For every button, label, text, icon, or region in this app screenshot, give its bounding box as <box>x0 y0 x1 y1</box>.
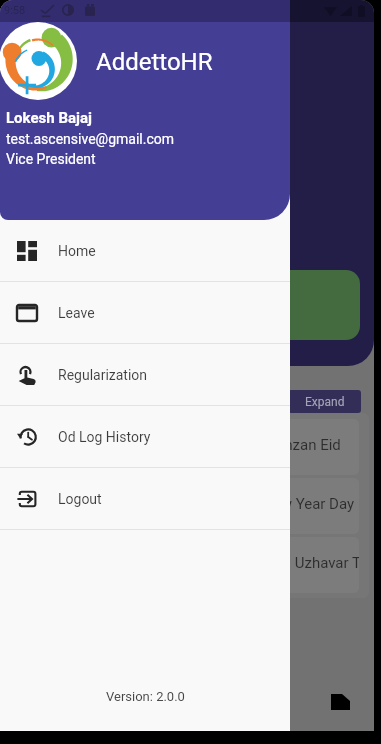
staticText: Thai Uzhavar Thirunal <box>262 554 359 572</box>
staticText: Ramzan Eid <box>262 436 341 454</box>
staticText: AddettoHR <box>96 48 213 76</box>
button[interactable]: Logout <box>0 468 290 530</box>
staticText: test.ascensive@gmail.com <box>6 131 174 147</box>
staticText: Expand <box>305 395 345 409</box>
staticText: Regularization <box>58 367 148 383</box>
staticText: 9:58 <box>4 4 26 17</box>
button[interactable]: Home <box>0 220 290 282</box>
staticText: Vice President <box>6 151 96 167</box>
staticText: Home <box>58 243 96 259</box>
button[interactable]: Regularization <box>0 344 290 406</box>
button[interactable]: New Year Day <box>12 478 359 534</box>
staticText: New Year Day <box>262 495 355 513</box>
button[interactable] <box>14 270 360 340</box>
button[interactable]: Ramzan Eid <box>12 419 359 475</box>
staticText: Lokesh Bajaj <box>6 109 92 127</box>
other: Documents <box>331 694 350 710</box>
staticText: Od Log History <box>58 429 151 445</box>
button[interactable]: Od Log History <box>0 406 290 468</box>
staticText: Leave <box>58 305 95 321</box>
staticText: Version: 2.0.0 <box>106 689 185 704</box>
button[interactable]: Expand <box>288 390 361 413</box>
staticText: Logout <box>58 491 102 507</box>
button[interactable]: Leave <box>0 282 290 344</box>
button[interactable]: Thai Uzhavar Thirunal <box>12 537 359 593</box>
